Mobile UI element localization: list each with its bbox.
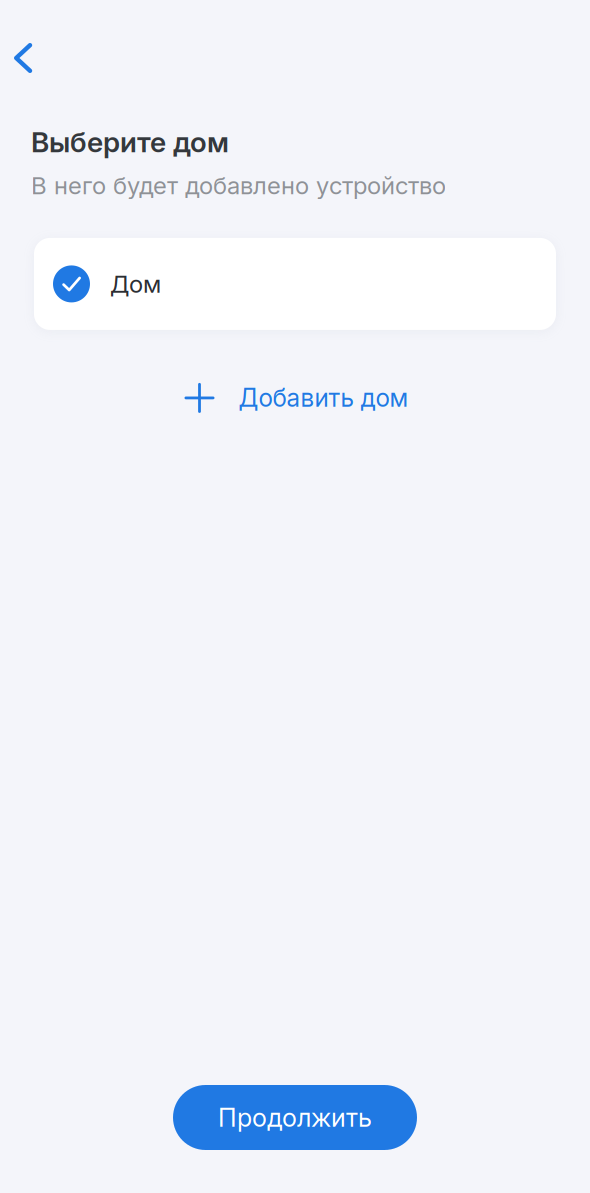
button[interactable]: Добавить дом xyxy=(168,370,424,426)
staticText: Дом xyxy=(110,269,161,298)
button[interactable]: Back xyxy=(0,35,46,81)
staticText: Продолжить xyxy=(218,1102,372,1133)
button[interactable]: Продолжить xyxy=(173,1085,417,1150)
staticText: Добавить дом xyxy=(238,383,408,413)
staticText: Выберите дом xyxy=(31,125,229,159)
staticText: В него будет добавлено устройство xyxy=(31,171,446,200)
button[interactable]: Дом xyxy=(34,238,556,330)
